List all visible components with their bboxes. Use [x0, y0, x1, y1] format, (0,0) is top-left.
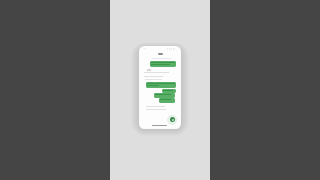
- button[interactable]: [150, 61, 176, 67]
- button[interactable]: New message: [170, 117, 175, 122]
- button[interactable]: [146, 82, 176, 88]
- button[interactable]: [154, 93, 175, 98]
- button[interactable]: [162, 89, 176, 93]
- button[interactable]: [159, 98, 175, 103]
